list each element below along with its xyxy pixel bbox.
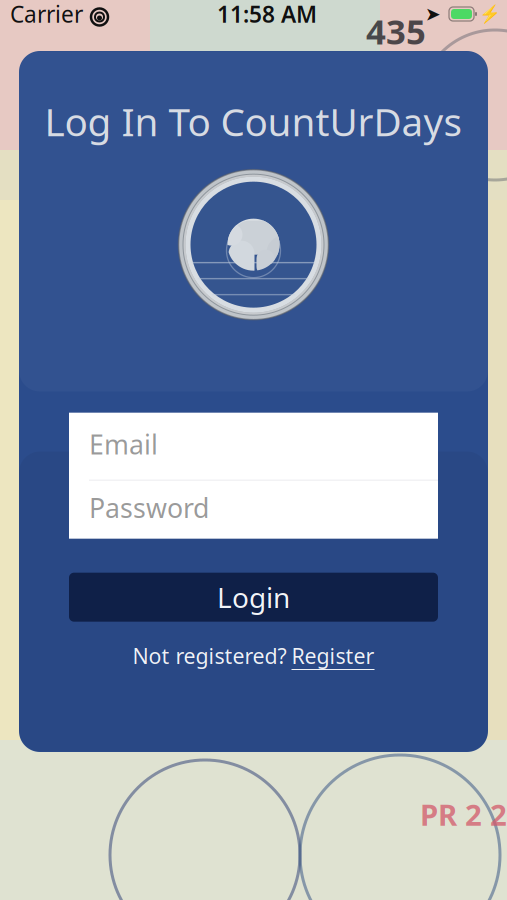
staticText: PR 2 2 2015 [420,795,507,834]
staticText: ⚡ [479,4,501,24]
staticText: 435 [366,8,426,54]
staticText: Not registered? [132,642,286,670]
staticText: 11:58 AM [217,0,317,29]
staticText: Password [89,490,209,525]
button[interactable]: Password [69,477,438,539]
button[interactable]: Login [69,573,438,622]
staticText: Register [291,642,374,670]
staticText: ➤ [425,3,441,25]
staticText: Log In To CountUrDays [44,95,462,148]
button[interactable]: Email [69,413,438,476]
staticText: Login [217,579,290,616]
button[interactable]: Not registered? [122,638,384,674]
staticText: Carrier [10,0,83,29]
staticText: Email [89,426,158,462]
